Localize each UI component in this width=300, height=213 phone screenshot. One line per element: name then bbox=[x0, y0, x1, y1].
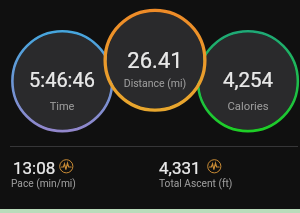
staticText: 26.41 bbox=[85, 48, 225, 74]
staticText: Total Ascent (ft) bbox=[159, 178, 233, 190]
button[interactable]: Time bbox=[0, 68, 132, 91]
button[interactable]: Distance bbox=[85, 48, 225, 74]
staticText: Pace (min/mi) bbox=[11, 178, 76, 190]
other: Heart rate bbox=[58, 158, 75, 175]
staticText: Calories bbox=[178, 100, 300, 113]
staticText: 4,331 bbox=[159, 158, 201, 178]
staticText: 13:08 bbox=[13, 158, 56, 178]
button[interactable]: Calories bbox=[178, 68, 300, 92]
other: Heart rate bbox=[206, 158, 223, 175]
staticText: 5:46:46 bbox=[0, 68, 132, 91]
button[interactable] bbox=[155, 155, 223, 185]
button[interactable] bbox=[9, 155, 75, 185]
staticText: Time bbox=[0, 100, 132, 113]
staticText: 4,254 bbox=[178, 68, 300, 92]
staticText: Distance (mi) bbox=[85, 77, 225, 89]
